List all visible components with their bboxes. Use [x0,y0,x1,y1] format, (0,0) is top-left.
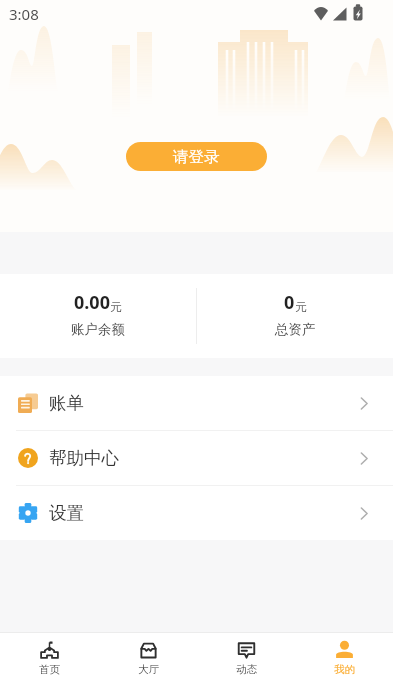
button[interactable]: 大厅 [99,633,197,699]
button[interactable]: 请登录 [126,142,267,171]
staticText: 帮助中心 [49,447,119,469]
staticText: 设置 [49,502,84,524]
staticText: 账单 [49,392,84,414]
staticText: 0.00 [74,290,110,315]
staticText: 元 [110,300,122,314]
button[interactable]: 账单 [0,376,393,430]
button[interactable]: 0 [197,274,393,358]
button[interactable]: 我的 [295,633,393,699]
staticText: 0 [284,290,295,315]
staticText: 总资产 [275,321,316,338]
button[interactable]: 帮助中心 [0,431,393,485]
staticText: 首页 [39,663,60,676]
button[interactable]: 首页 [0,633,99,699]
button[interactable]: 0.00 [0,274,196,358]
staticText: 我的 [334,663,355,676]
staticText: 大厅 [138,663,159,676]
staticText: 动态 [236,663,257,676]
staticText: 3:08 [9,4,39,24]
staticText: 请登录 [173,147,220,167]
button[interactable]: 设置 [0,486,393,540]
button[interactable]: 动态 [197,633,295,699]
staticText: 元 [295,300,307,314]
staticText: 账户余额 [71,321,125,338]
